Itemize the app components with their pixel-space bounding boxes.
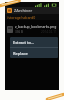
button[interactable]: z_backup_bookmarks.png [5,24,59,34]
button[interactable]: Extract to... [10,37,58,47]
staticText: 336 B [15,30,23,34]
staticText: ZArchiver [14,8,33,13]
staticText: Replace [13,51,28,56]
button[interactable]: /storage/sdcard0 [5,14,59,20]
button[interactable]: Replace [10,48,58,58]
button[interactable]: ZArchiver [5,7,59,14]
staticText: z_backup_bookmarks.png [15,24,57,29]
staticText: 2014-02-11 [41,30,57,34]
staticText: Extract to... [13,40,35,45]
staticText: /storage/sdcard0 [7,15,36,20]
